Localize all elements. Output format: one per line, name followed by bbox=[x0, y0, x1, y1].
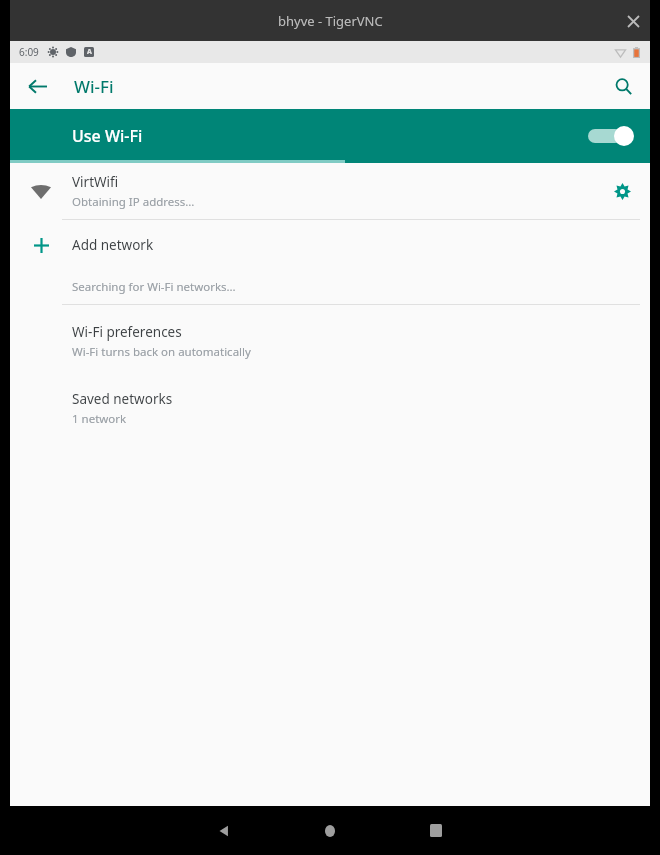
staticText: Wi-Fi preferences bbox=[72, 323, 182, 341]
button[interactable]: Back bbox=[197, 806, 251, 855]
staticText: Use Wi-Fi bbox=[72, 125, 143, 147]
button[interactable]: Network settings bbox=[594, 163, 650, 219]
button[interactable]: VirtWifi bbox=[10, 163, 650, 219]
button[interactable]: Wi-Fi preferences bbox=[10, 315, 650, 370]
button[interactable]: Back bbox=[16, 65, 58, 107]
button[interactable]: Add network bbox=[10, 220, 650, 270]
staticText: bhyve - TigerVNC bbox=[278, 12, 383, 30]
button[interactable]: Use Wi-Fi toggle bbox=[588, 121, 634, 151]
button[interactable]: Recent apps bbox=[409, 806, 463, 855]
staticText: Wi-Fi turns back on automatically bbox=[72, 344, 251, 360]
staticText: A bbox=[87, 47, 92, 57]
button[interactable]: Saved networks bbox=[10, 388, 650, 437]
button[interactable]: Home bbox=[303, 806, 357, 855]
staticText: Obtaining IP address… bbox=[72, 194, 195, 210]
staticText: 6:09 bbox=[19, 45, 39, 59]
staticText: Wi-Fi bbox=[74, 75, 114, 98]
button[interactable]: Use Wi-Fi bbox=[10, 109, 650, 163]
button[interactable]: Search bbox=[602, 65, 644, 107]
staticText: 1 network bbox=[72, 411, 127, 427]
staticText: Saved networks bbox=[72, 390, 173, 408]
staticText: VirtWifi bbox=[72, 173, 119, 191]
staticText: Add network bbox=[72, 236, 154, 254]
button[interactable]: Close bbox=[616, 4, 650, 38]
staticText: Searching for Wi-Fi networks… bbox=[72, 279, 236, 295]
